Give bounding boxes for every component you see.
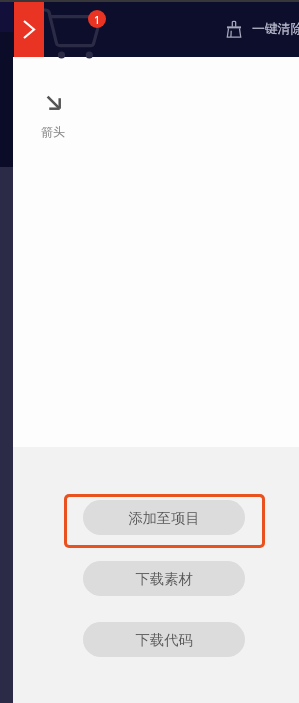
staticText: 箭头 [41,124,65,139]
button[interactable]: 一键清除 [227,0,299,57]
staticText: 1 [94,12,101,27]
staticText: 下载代码 [135,631,193,649]
button[interactable]: Expand panel [14,0,44,57]
button[interactable]: 下载代码 [83,622,245,657]
button[interactable]: 添加至项目 [67,497,262,545]
button[interactable]: 下载素材 [83,561,245,596]
staticText: 添加至项目 [128,509,200,527]
staticText: 下载素材 [135,570,193,588]
staticText: 一键清除 [252,21,299,37]
